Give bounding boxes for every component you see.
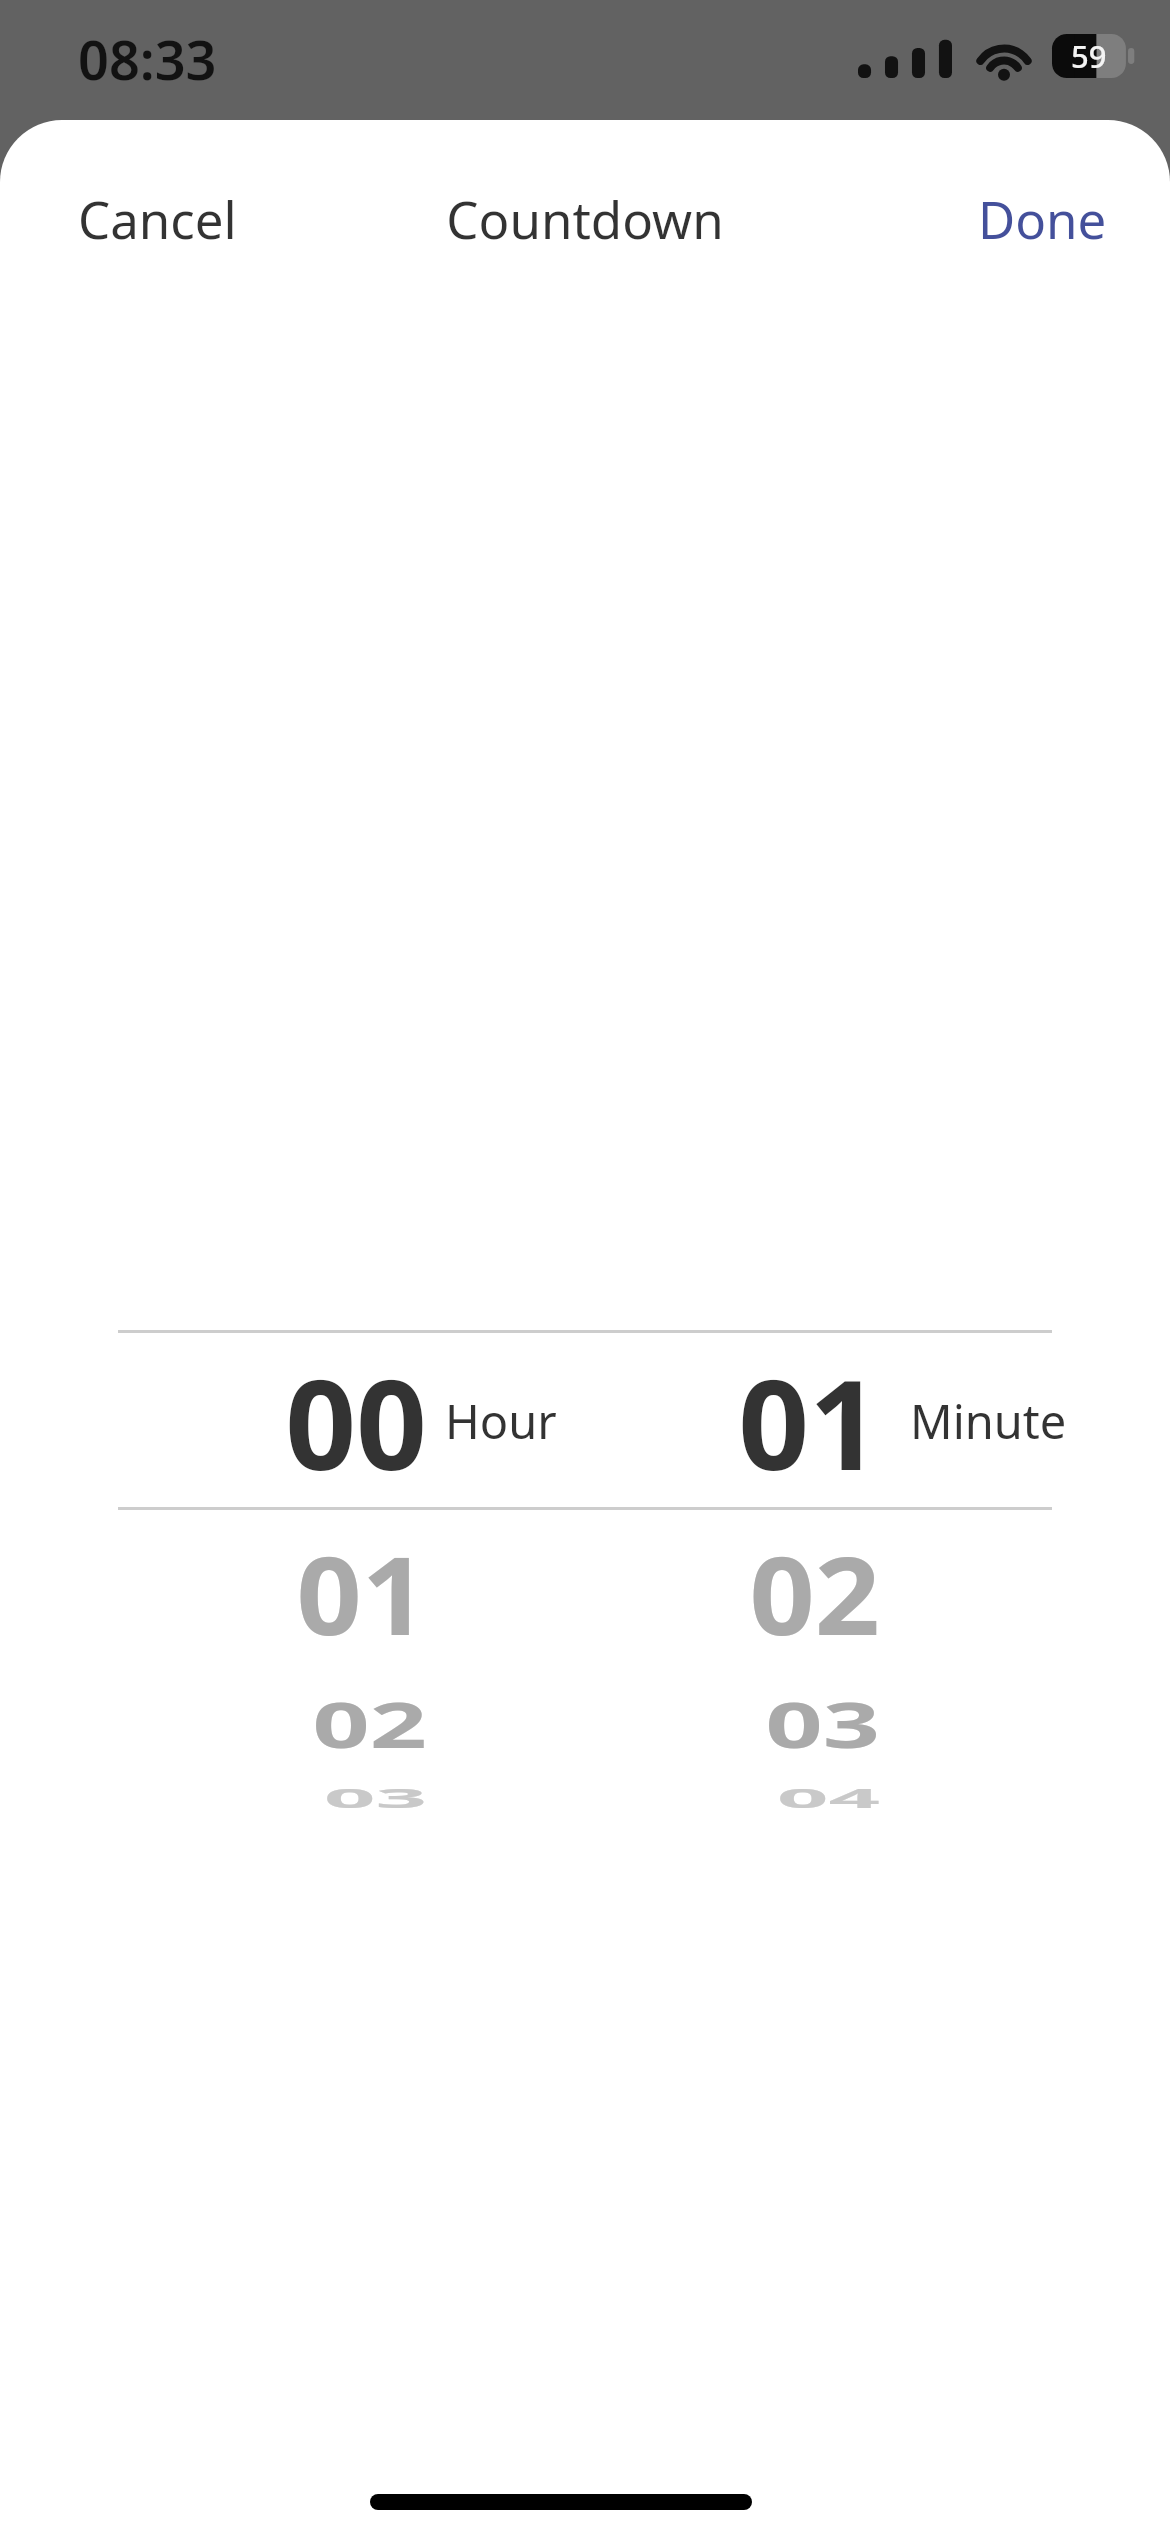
staticText: Minute [910,1389,1067,1453]
button[interactable]: Hours [127,1300,727,1920]
staticText: 01 [738,1337,880,1506]
staticText: 02 [312,1682,427,1766]
button[interactable]: Minutes [580,1300,1170,1920]
staticText: 03 [765,1682,880,1766]
staticText: 00 [285,1337,427,1506]
staticText: Countdown [446,184,724,253]
other: Wi-Fi [974,36,1034,80]
staticText: Done [978,184,1107,253]
staticText: 01 [296,1519,427,1666]
staticText: 02 [749,1519,880,1666]
other: Cellular signal [858,40,952,78]
staticText: Cancel [78,184,237,253]
button[interactable]: Done [944,172,1126,264]
staticText: Hour [445,1389,557,1453]
staticText: 59 [1071,35,1107,77]
staticText: 04 [777,1779,880,1816]
other: Battery 59 percent [1052,34,1136,78]
button[interactable]: Cancel [46,172,244,264]
staticText: 08:33 [78,22,217,96]
staticText: 03 [324,1779,427,1816]
